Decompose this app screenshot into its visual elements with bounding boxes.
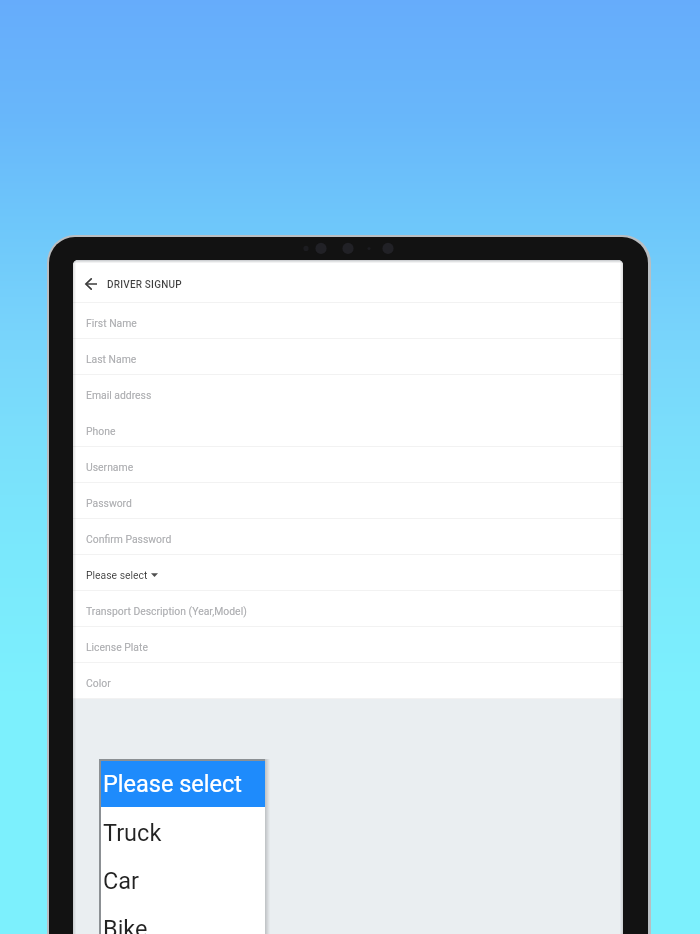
button[interactable]: Transport Description (Year,Model) [73, 591, 623, 627]
button[interactable]: Confirm Password [73, 519, 623, 555]
button[interactable]: License Plate [73, 627, 623, 663]
button[interactable]: Please select [73, 555, 623, 591]
staticText: License Plate [86, 641, 148, 653]
staticText: First Name [86, 317, 137, 329]
button[interactable]: Last Name [73, 339, 623, 375]
staticText: Phone [86, 425, 116, 437]
button[interactable]: Username [73, 447, 623, 483]
button[interactable]: First Name [73, 303, 623, 339]
button[interactable]: Password [73, 483, 623, 519]
staticText: Truck [103, 819, 162, 847]
button[interactable]: Phone [73, 411, 623, 447]
button[interactable]: Back [76, 269, 106, 299]
staticText: Transport Description (Year,Model) [86, 605, 247, 617]
button[interactable]: Color [73, 663, 623, 699]
button[interactable]: Please select [101, 761, 265, 934]
staticText: Username [86, 461, 134, 473]
button[interactable]: Car [101, 855, 265, 903]
staticText: Please select [103, 770, 242, 798]
button[interactable]: Email address [73, 375, 623, 411]
staticText: Bike [103, 915, 148, 934]
staticText: Last Name [86, 353, 137, 365]
staticText: Please select [86, 569, 148, 581]
button[interactable]: Bike [101, 903, 265, 934]
staticText: Car [103, 867, 140, 895]
button[interactable]: Truck [101, 807, 265, 855]
staticText: Confirm Password [86, 533, 172, 545]
staticText: Email address [86, 389, 152, 401]
button[interactable]: Please select [101, 761, 265, 807]
staticText: Password [86, 497, 132, 509]
staticText: DRIVER SIGNUP [107, 279, 182, 291]
staticText: Color [86, 677, 111, 689]
